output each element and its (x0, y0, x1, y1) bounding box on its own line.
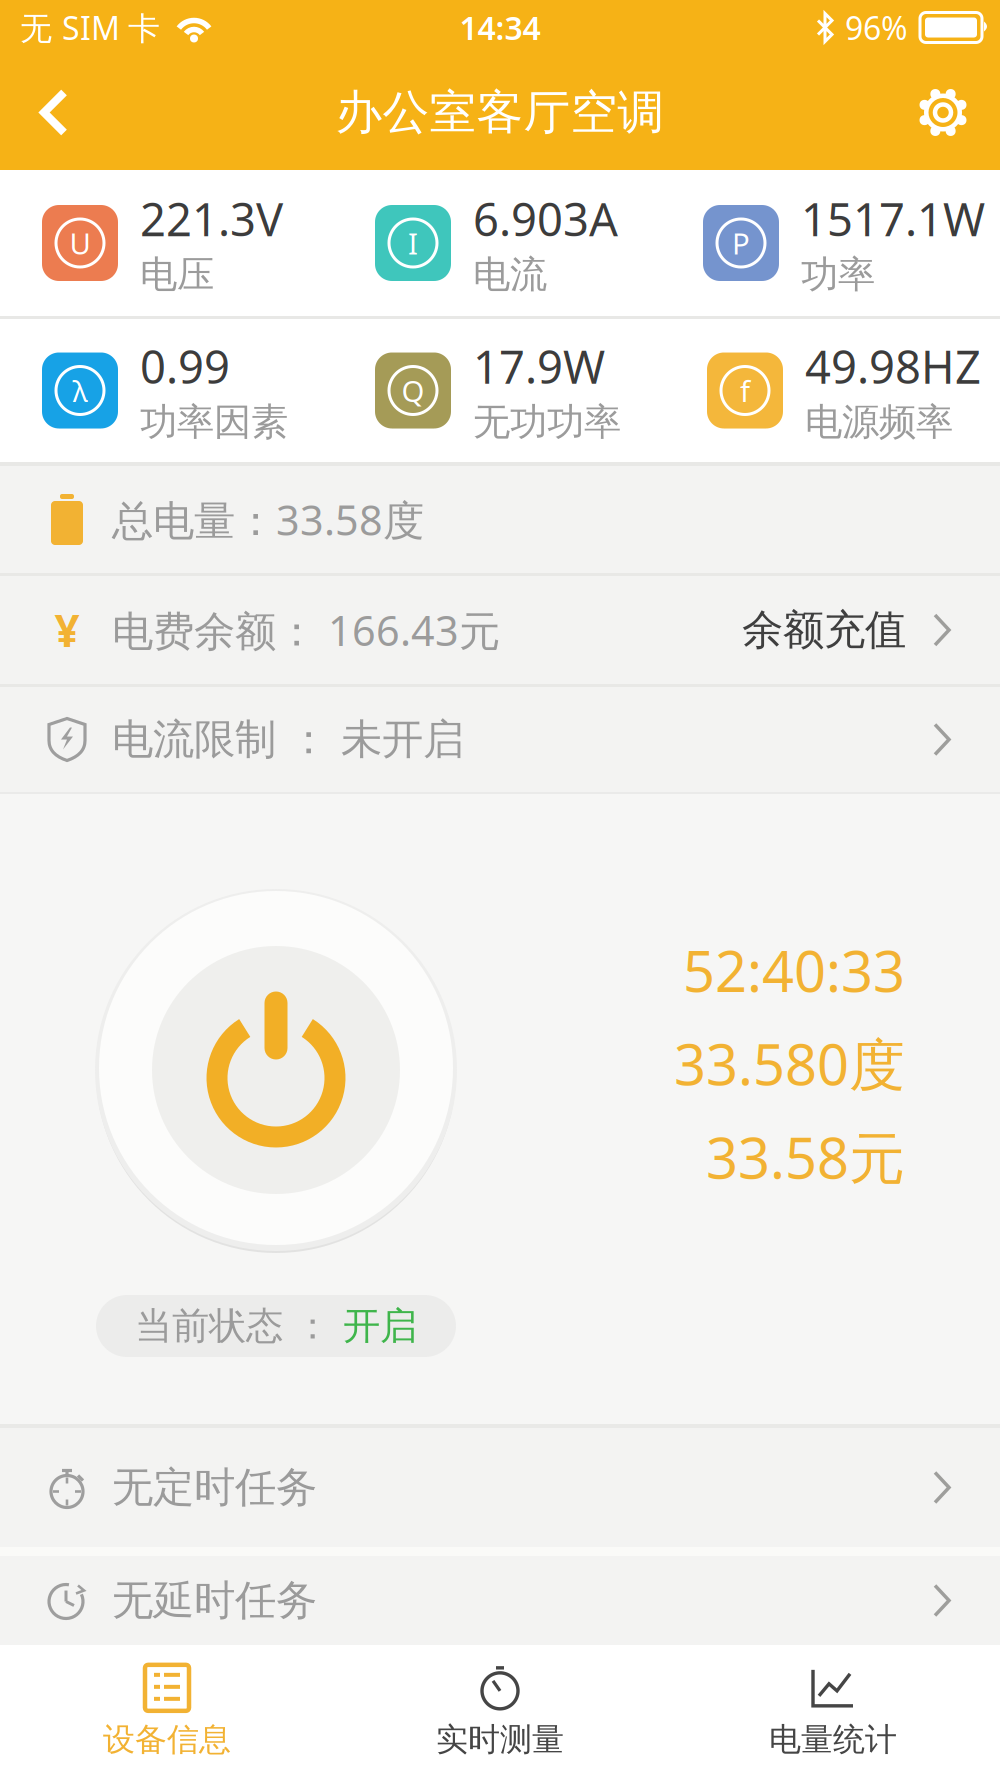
staticText: 无 SIM 卡 (20, 6, 160, 49)
staticText: 电量统计 (769, 1720, 897, 1759)
staticText: 设备信息 (103, 1720, 231, 1759)
button[interactable]: 电量统计 (666, 1645, 999, 1778)
button[interactable]: 设备信息 (0, 1645, 333, 1778)
staticText: 余额充值 (742, 605, 906, 655)
staticText: 电源频率 (805, 399, 953, 445)
staticText: 221.3V (140, 188, 283, 249)
button[interactable]: 无定时任务 (0, 1428, 1000, 1547)
staticText: U (69, 223, 90, 262)
button[interactable]: 设置 (908, 87, 1000, 137)
staticText: I (408, 223, 418, 262)
staticText: 当前状态 ： (135, 1303, 331, 1349)
staticText: 电费余额： 166.43元 (112, 603, 500, 657)
staticText: 无定时任务 (112, 1462, 317, 1513)
button[interactable]: 电源开关 (95, 889, 457, 1251)
button[interactable]: 返回 (0, 87, 90, 137)
staticText: 96% (845, 6, 908, 49)
staticText: λ (72, 371, 87, 410)
staticText: 无延时任务 (112, 1575, 317, 1626)
staticText: 总电量：33.58度 (112, 492, 424, 547)
staticText: 0.99 (140, 336, 230, 396)
staticText: 功率因素 (140, 399, 288, 445)
staticText: 开启 (343, 1303, 417, 1349)
staticText: 14:34 (459, 6, 540, 49)
staticText: 33.58元 (706, 1120, 905, 1194)
staticText: 实时测量 (436, 1720, 564, 1759)
staticText: 电流限制 ： 未开启 (112, 714, 464, 765)
staticText: ¥ (54, 601, 79, 659)
staticText: 33.580度 (674, 1026, 905, 1101)
button[interactable]: 电流限制 ： 未开启 (0, 687, 1000, 792)
staticText: 无功功率 (473, 399, 621, 445)
button[interactable]: 无延时任务 (0, 1556, 1000, 1645)
staticText: 电流 (473, 252, 547, 298)
staticText: P (732, 223, 750, 262)
staticText: 52:40:33 (683, 933, 905, 1007)
staticText: Q (401, 371, 424, 410)
staticText: 17.9W (473, 336, 605, 396)
button[interactable]: 实时测量 (333, 1645, 666, 1778)
staticText: f (740, 371, 750, 410)
staticText: 办公室客厅空调 (335, 84, 664, 141)
staticText: 6.903A (473, 188, 618, 249)
staticText: 1517.1W (801, 188, 985, 249)
button[interactable]: ¥ (0, 576, 1000, 684)
staticText: 电压 (140, 252, 214, 298)
staticText: 49.98HZ (805, 336, 981, 396)
staticText: 功率 (801, 252, 875, 298)
